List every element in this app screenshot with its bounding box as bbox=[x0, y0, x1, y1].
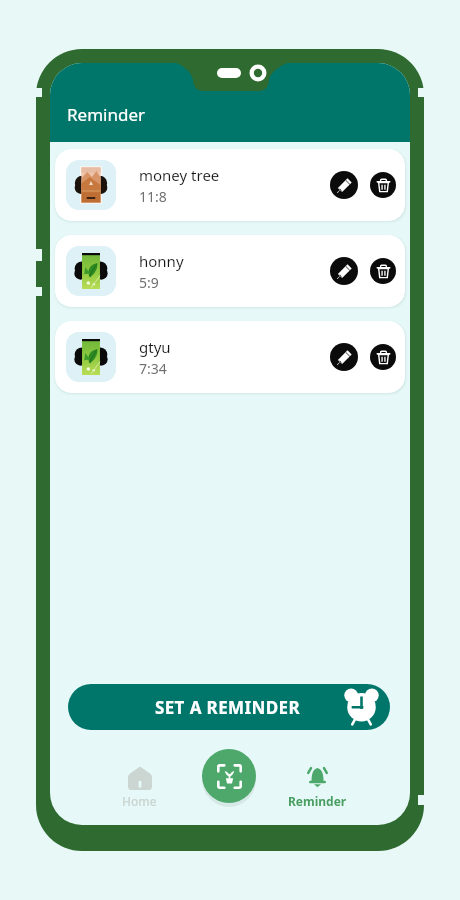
staticText: Reminder bbox=[288, 793, 347, 809]
button[interactable]: SET A REMINDER bbox=[68, 684, 390, 730]
staticText: Reminder bbox=[67, 103, 146, 126]
button[interactable]: Edit bbox=[330, 343, 358, 371]
staticText: money tree bbox=[139, 165, 220, 185]
staticText: Home bbox=[122, 793, 157, 809]
button[interactable]: Reminder bbox=[282, 765, 352, 809]
button[interactable]: Delete bbox=[370, 172, 396, 198]
staticText: 11:8 bbox=[139, 187, 167, 206]
staticText: honny bbox=[139, 251, 184, 271]
button[interactable]: gtyu bbox=[55, 321, 405, 393]
button[interactable]: Edit bbox=[330, 257, 358, 285]
button[interactable]: Edit bbox=[330, 171, 358, 199]
staticText: SET A REMINDER bbox=[90, 696, 365, 719]
staticText: 5:9 bbox=[139, 273, 159, 292]
staticText: gtyu bbox=[139, 337, 171, 357]
button[interactable]: Delete bbox=[370, 344, 396, 370]
button[interactable]: honny bbox=[55, 235, 405, 307]
button[interactable]: Scan plant bbox=[202, 749, 256, 803]
button[interactable]: money tree bbox=[55, 149, 405, 221]
button[interactable]: Delete bbox=[370, 258, 396, 284]
button[interactable]: Home bbox=[107, 766, 172, 809]
staticText: 7:34 bbox=[139, 359, 167, 378]
